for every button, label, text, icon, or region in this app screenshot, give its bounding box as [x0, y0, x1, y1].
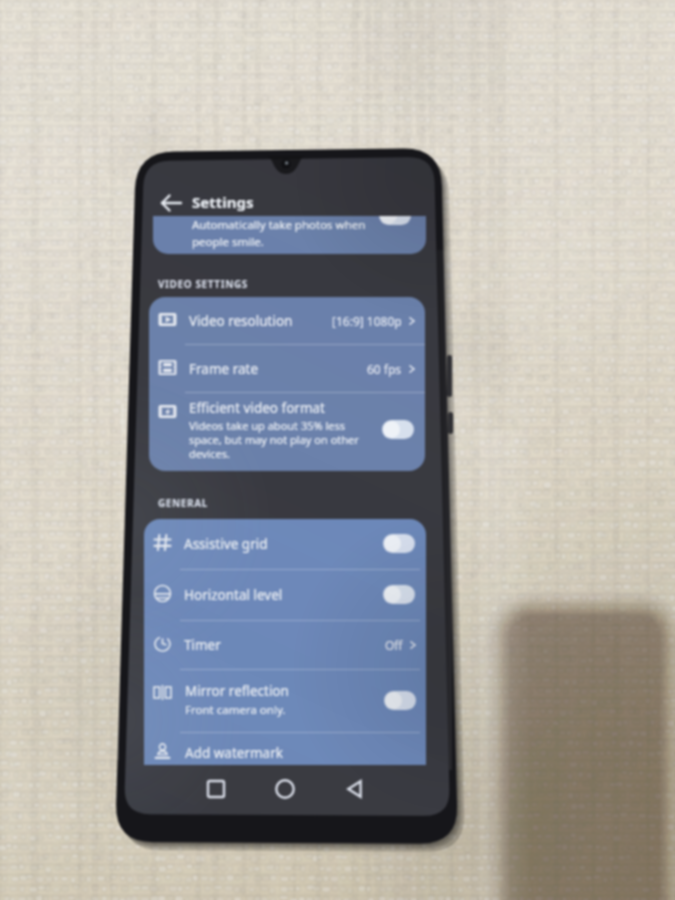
staticText: 60 fps	[367, 361, 402, 377]
staticText: Efficient video format	[189, 399, 325, 417]
button[interactable]: Mirror reflection	[144, 670, 426, 732]
staticText: Add watermark	[185, 744, 283, 762]
staticText: GENERAL	[158, 496, 208, 510]
staticText: Settings	[192, 192, 254, 212]
staticText: Frame rate	[189, 360, 258, 378]
staticText: [16:9] 1080p	[332, 313, 402, 329]
staticText: people smile.	[192, 234, 264, 250]
button[interactable]: Home	[271, 775, 299, 803]
button[interactable]: Horizontal level	[144, 570, 426, 619]
button[interactable]: Video resolution	[149, 297, 425, 344]
button[interactable]: Add watermark	[144, 733, 426, 765]
button[interactable]: Efficient video format	[149, 393, 425, 471]
button[interactable]: Assistive grid	[144, 519, 426, 568]
staticText: Mirror reflection	[185, 682, 289, 700]
button[interactable]: Automatically take photos when	[153, 216, 426, 254]
staticText: Horizontal level	[184, 586, 283, 604]
button[interactable]: Recents	[202, 775, 230, 803]
button[interactable]: Back	[157, 188, 187, 218]
staticText: Videos take up about 35% less space, but…	[189, 418, 365, 461]
button[interactable]: Assistive grid	[383, 534, 415, 553]
button[interactable]: Horizontal level	[383, 585, 415, 604]
staticText: Video resolution	[189, 312, 293, 330]
staticText: Timer	[184, 636, 221, 654]
staticText: Off	[385, 637, 403, 653]
button[interactable]: Efficient video format	[382, 420, 414, 439]
staticText: Front camera only.	[185, 702, 286, 718]
staticText: Automatically take photos when	[192, 217, 366, 233]
staticText: Assistive grid	[184, 535, 268, 553]
button[interactable]: Frame rate	[149, 345, 425, 392]
button[interactable]: Back	[341, 775, 369, 803]
button[interactable]: Mirror reflection	[384, 691, 416, 710]
button[interactable]: Capture smiles	[379, 216, 411, 225]
staticText: VIDEO SETTINGS	[158, 277, 248, 291]
button[interactable]: Timer	[144, 621, 426, 668]
